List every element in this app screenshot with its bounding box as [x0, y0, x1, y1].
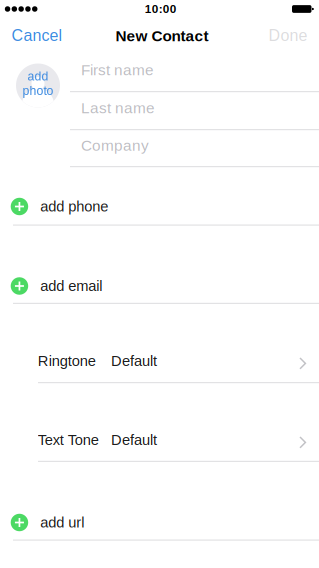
button[interactable]: add phone — [0, 186, 319, 226]
button[interactable]: Last name — [70, 89, 319, 126]
staticText: Ringtone — [38, 353, 96, 369]
button[interactable]: Done — [259, 20, 317, 50]
staticText: Default — [111, 432, 157, 448]
button[interactable]: add url — [0, 502, 319, 542]
staticText: Cancel — [11, 27, 62, 44]
staticText: 10:00 — [145, 2, 177, 15]
staticText: add phone — [40, 198, 108, 215]
staticText: Last name — [81, 99, 155, 116]
staticText: add email — [40, 278, 102, 294]
button[interactable]: Text Tone — [0, 419, 319, 461]
staticText: New Contact — [115, 27, 208, 44]
staticText: Company — [81, 137, 149, 154]
button[interactable]: Ringtone — [0, 340, 319, 382]
staticText: add — [27, 69, 48, 83]
staticText: add url — [40, 514, 84, 531]
staticText: Text Tone — [38, 432, 99, 448]
staticText: Default — [111, 353, 157, 369]
button[interactable]: add email — [0, 266, 319, 306]
button[interactable]: Cancel — [4, 20, 70, 50]
button[interactable]: First name — [70, 51, 319, 88]
staticText: photo — [22, 84, 53, 98]
button[interactable]: Company — [70, 127, 319, 164]
staticText: Done — [268, 27, 307, 44]
staticText: First name — [81, 61, 154, 78]
button[interactable]: Add photo — [16, 63, 60, 107]
